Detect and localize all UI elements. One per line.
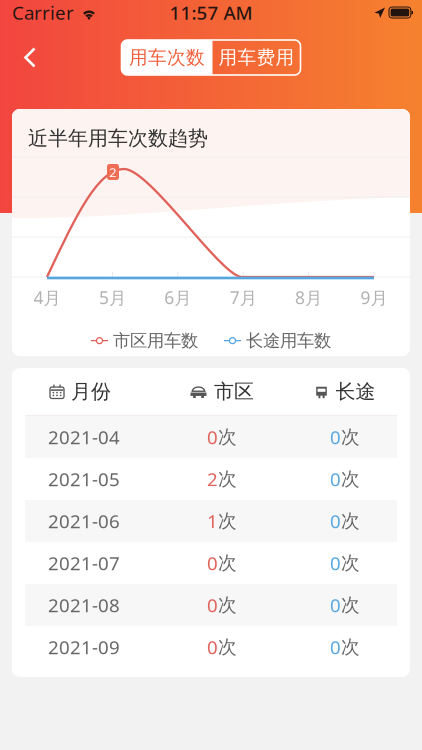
staticText: 0 — [330, 593, 341, 617]
staticText: 0 — [207, 593, 218, 617]
staticText: 4月 — [33, 286, 60, 309]
button[interactable]: Back — [0, 35, 52, 80]
staticText: 次 — [218, 593, 237, 616]
staticText: 0 — [207, 425, 218, 449]
staticText: 8月 — [295, 286, 322, 309]
staticText: 0 — [330, 467, 341, 491]
staticText: 1 — [207, 509, 218, 533]
staticText: 长途用车数 — [246, 330, 331, 351]
staticText: 2021-09 — [48, 635, 120, 659]
staticText: 2 — [109, 163, 117, 181]
staticText: 次 — [218, 425, 237, 448]
staticText: 次 — [218, 467, 237, 490]
staticText: 近半年用车次数趋势 — [28, 126, 208, 151]
staticText: 0 — [330, 635, 341, 659]
staticText: 次 — [218, 551, 237, 574]
staticText: 5月 — [99, 286, 126, 309]
staticText: 7月 — [230, 286, 257, 309]
staticText: 次 — [341, 551, 360, 574]
staticText: 用车次数 — [129, 46, 205, 69]
staticText: 2021-06 — [48, 509, 120, 533]
staticText: 次 — [218, 509, 237, 532]
staticText: 用车费用 — [218, 46, 294, 69]
staticText: 市区 — [214, 379, 254, 404]
staticText: 6月 — [164, 286, 191, 309]
staticText: 2 — [207, 467, 218, 491]
staticText: 次 — [341, 425, 360, 448]
staticText: 0 — [330, 425, 341, 449]
staticText: 市区用车数 — [113, 330, 198, 351]
staticText: 次 — [218, 635, 237, 658]
staticText: 0 — [330, 551, 341, 575]
staticText: 月份 — [71, 379, 111, 404]
staticText: 次 — [341, 467, 360, 490]
staticText: Carrier — [12, 0, 74, 25]
staticText: 2021-05 — [48, 467, 120, 491]
staticText: 0 — [330, 509, 341, 533]
button[interactable]: 用车费用 — [212, 40, 300, 75]
button[interactable]: 用车次数 — [121, 40, 212, 75]
staticText: 2021-08 — [48, 593, 120, 617]
staticText: 0 — [207, 551, 218, 575]
staticText: 2021-07 — [48, 551, 120, 575]
staticText: 9月 — [360, 286, 387, 309]
staticText: 次 — [341, 509, 360, 532]
staticText: 次 — [341, 593, 360, 616]
staticText: 2021-04 — [48, 425, 120, 449]
staticText: 长途 — [335, 379, 375, 404]
staticText: 次 — [341, 635, 360, 658]
staticText: 0 — [207, 635, 218, 659]
staticText: 11:57 AM — [169, 0, 252, 25]
